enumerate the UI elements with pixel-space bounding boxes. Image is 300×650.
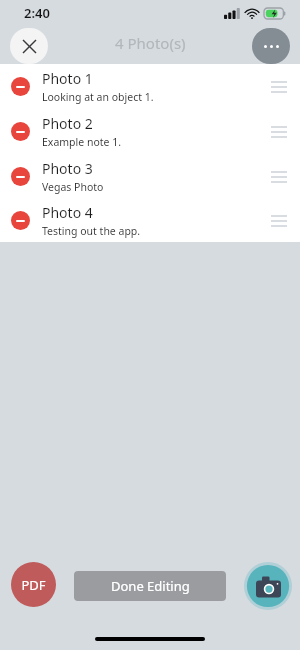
staticText: 4 Photo(s) <box>115 33 186 53</box>
staticText: Photo 1 <box>42 69 93 88</box>
button[interactable]: Remove Photo 4 <box>0 199 300 242</box>
staticText: Photo 2 <box>42 114 93 133</box>
button[interactable]: PDF <box>11 562 56 607</box>
button[interactable]: Close <box>10 28 48 64</box>
staticText: Photo 4 <box>42 203 93 222</box>
button[interactable]: Remove Photo 3 <box>11 167 30 186</box>
staticText: Looking at an object 1. <box>42 90 154 104</box>
staticText: Example note 1. <box>42 135 122 149</box>
button[interactable]: More options <box>252 28 290 64</box>
staticText: PDF <box>21 576 46 594</box>
button[interactable]: Reorder Photo 1 <box>264 64 294 109</box>
button[interactable]: Reorder Photo 3 <box>264 154 294 199</box>
button[interactable]: Remove Photo 1 <box>11 77 30 96</box>
staticText: Vegas Photo <box>42 180 104 194</box>
button[interactable]: Remove Photo 2 <box>0 109 300 154</box>
button[interactable]: Remove Photo 3 <box>0 154 300 199</box>
staticText: 2:40 <box>24 4 50 22</box>
button[interactable]: Reorder Photo 4 <box>264 199 294 242</box>
button[interactable]: Reorder Photo 2 <box>264 109 294 154</box>
button[interactable]: Take photo <box>244 562 292 610</box>
button[interactable]: Done Editing <box>74 571 226 601</box>
staticText: Photo 3 <box>42 159 93 178</box>
button[interactable]: Remove Photo 1 <box>0 64 300 109</box>
staticText: Done Editing <box>111 577 190 595</box>
button[interactable]: Remove Photo 4 <box>11 211 30 230</box>
button[interactable]: Remove Photo 2 <box>11 122 30 141</box>
staticText: Testing out the app. <box>42 224 141 238</box>
